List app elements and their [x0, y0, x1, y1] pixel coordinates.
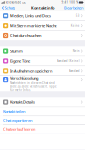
staticText: 100 % [69, 1, 78, 4]
staticText: Schatz [4, 5, 15, 11]
staticText: Telekom.de [5, 1, 21, 4]
staticText: Verschlüsselung [10, 76, 38, 81]
button[interactable]: Chat exportieren [0, 116, 85, 125]
staticText: Chatverlauf leeren [3, 127, 35, 132]
button[interactable]: In Aufnahmen speichern [0, 66, 85, 76]
staticText: Kontakt teilen [3, 109, 25, 114]
staticText: Standard (Keine) [57, 59, 80, 63]
button[interactable]: Chatverlauf leeren [0, 125, 85, 133]
button[interactable]: Schatz [0, 5, 15, 11]
button[interactable]: Kontakt teilen [0, 107, 85, 116]
button[interactable]: Kontakt-Details [0, 97, 85, 107]
staticText: Mit Stern markierte Nachr. [10, 23, 57, 28]
button[interactable]: Verschlüsselung [0, 76, 85, 91]
staticText: In Aufnahmen speichern [10, 68, 52, 73]
staticText: Eigene Töne [10, 58, 30, 64]
button[interactable]: Eigene Töne [0, 56, 85, 66]
staticText: Kontaktinfo [31, 5, 54, 11]
button[interactable]: Chat durchsuchen [0, 31, 85, 40]
staticText: Kontakt-Details [10, 99, 35, 105]
staticText: Chat exportieren [3, 118, 32, 123]
staticText: Bearbeiten [64, 5, 83, 11]
staticText: Nein [73, 49, 80, 53]
button[interactable]: Stumm [0, 46, 85, 56]
staticText: Keine [71, 24, 80, 27]
button[interactable]: Medien, Links und Docs [0, 11, 85, 20]
staticText: LTE [22, 1, 25, 4]
staticText: Chat durchsuchen [10, 33, 41, 38]
button[interactable]: Mit Stern markierte Nachr. [0, 21, 85, 30]
staticText: 9:41 [61, 1, 68, 4]
staticText: Nachrichten in diesem Chat sind Ende-zu-… [10, 81, 57, 92]
button[interactable]: Bearbeiten [64, 5, 85, 11]
staticText: Standard [69, 69, 80, 73]
staticText: Stumm [10, 48, 23, 54]
staticText: 53 [76, 14, 80, 17]
staticText: Medien, Links und Docs [10, 13, 51, 18]
